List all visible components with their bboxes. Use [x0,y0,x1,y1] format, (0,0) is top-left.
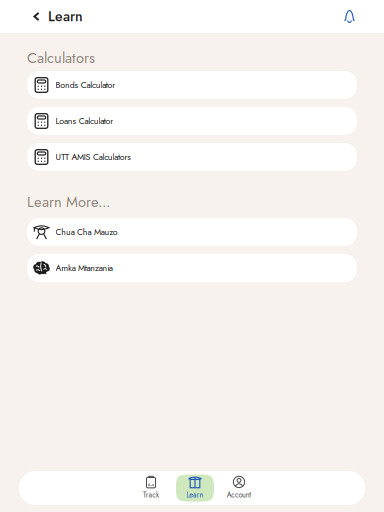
button[interactable]: Chua Cha Mauzo [27,218,357,246]
staticText: Account [227,490,251,500]
button[interactable]: Track [132,474,170,501]
button[interactable]: Bonds Calculator [27,71,357,99]
button[interactable]: Notifications [332,0,384,33]
button[interactable]: Learn [176,474,214,501]
button[interactable]: Amka Mtanzania [27,254,357,282]
staticText: UTT AMIS Calculators [55,151,131,163]
staticText: Bonds Calculator [55,79,115,91]
button[interactable]: Loans Calculator [27,107,357,135]
staticText: Learn [186,490,204,500]
staticText: Amka Mtanzania [55,262,113,274]
staticText: Chua Cha Mauzo [55,226,118,238]
button[interactable]: Learn [0,0,95,33]
button[interactable]: Account [220,474,258,501]
staticText: Learn [48,6,83,27]
staticText: Learn More... [27,191,110,213]
button[interactable]: UTT AMIS Calculators [27,143,357,171]
staticText: Calculators [27,47,95,69]
staticText: Loans Calculator [55,115,113,127]
staticText: Track [143,490,159,500]
